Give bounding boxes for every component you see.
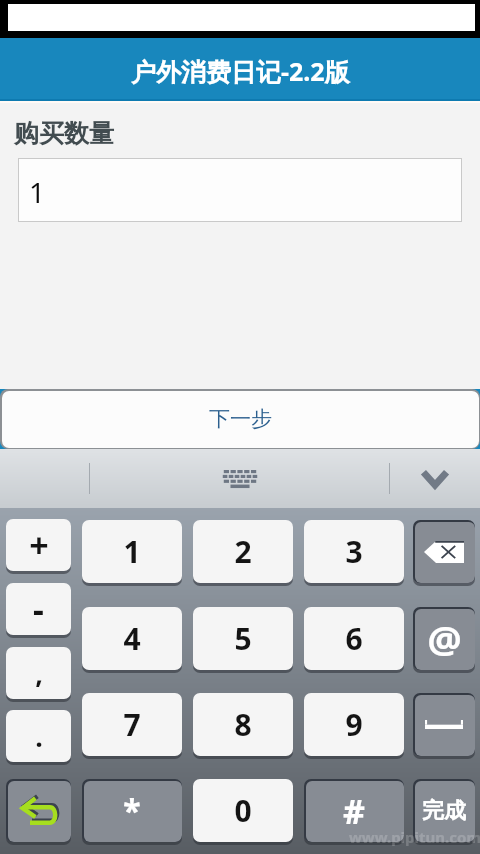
- staticText: +: [29, 522, 49, 568]
- button[interactable]: 0: [193, 779, 293, 842]
- staticText: 9: [345, 704, 363, 745]
- staticText: 1: [123, 531, 141, 572]
- button[interactable]: -: [6, 583, 71, 635]
- button[interactable]: 1: [82, 520, 182, 583]
- button[interactable]: 2: [193, 520, 293, 583]
- button[interactable]: 4: [82, 607, 182, 670]
- button[interactable]: 3: [304, 520, 404, 583]
- staticText: 5: [234, 618, 252, 659]
- staticText: 购买数量: [14, 118, 114, 149]
- staticText: 户外消费日记-2.2版: [131, 54, 350, 88]
- staticText: 下一步: [209, 406, 272, 432]
- button[interactable]: .: [6, 710, 71, 762]
- button[interactable]: ,: [6, 647, 71, 699]
- staticText: #: [343, 788, 365, 834]
- staticText: ,: [35, 655, 43, 692]
- button[interactable]: *: [82, 779, 182, 842]
- button[interactable]: 9: [304, 693, 404, 756]
- staticText: 1: [29, 173, 46, 211]
- staticText: 4: [123, 618, 141, 659]
- button[interactable]: 7: [82, 693, 182, 756]
- staticText: 7: [123, 704, 141, 745]
- button[interactable]: 5: [193, 607, 293, 670]
- staticText: 0: [234, 790, 252, 831]
- button[interactable]: 下一步: [0, 389, 480, 449]
- staticText: -: [33, 586, 44, 632]
- button[interactable]: Backspace: [413, 520, 475, 583]
- staticText: 完成: [422, 797, 466, 825]
- button[interactable]: #: [304, 779, 404, 842]
- button[interactable]: @: [413, 607, 475, 670]
- staticText: @: [427, 613, 462, 665]
- button[interactable]: 1: [18, 158, 462, 222]
- button[interactable]: Space: [413, 693, 475, 756]
- staticText: 6: [345, 618, 363, 659]
- button[interactable]: 6: [304, 607, 404, 670]
- staticText: *: [123, 789, 141, 833]
- button[interactable]: Hide keyboard: [390, 449, 480, 508]
- button[interactable]: Keyboard: [90, 449, 389, 508]
- staticText: 3: [345, 531, 363, 572]
- button[interactable]: 8: [193, 693, 293, 756]
- button[interactable]: +: [6, 519, 71, 571]
- button[interactable]: Enter: [6, 779, 71, 842]
- staticText: 2: [234, 531, 252, 572]
- staticText: .: [35, 718, 43, 755]
- staticText: 8: [234, 704, 252, 745]
- button[interactable]: 完成: [413, 779, 475, 842]
- staticText: www.pipitun.com: [349, 827, 480, 847]
